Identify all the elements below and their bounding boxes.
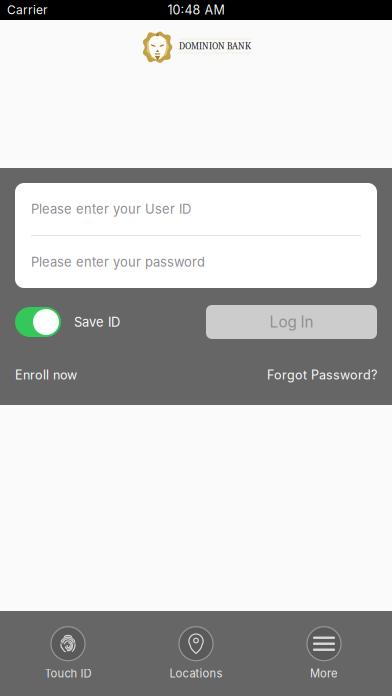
staticText: Please enter your password	[31, 254, 205, 270]
staticText: Touch ID	[44, 667, 91, 680]
button[interactable]: More	[274, 611, 374, 696]
staticText: More	[310, 667, 338, 680]
button[interactable]: Log In	[206, 305, 377, 339]
staticText: Carrier	[7, 3, 48, 17]
button[interactable]: Save ID	[15, 305, 120, 339]
staticText: Forgot Password?	[267, 367, 377, 383]
staticText: Enroll now	[15, 367, 77, 383]
staticText: Log In	[269, 313, 313, 331]
button[interactable]: Locations	[146, 611, 246, 696]
staticText: 10:48 AM	[167, 2, 224, 18]
button[interactable]: Enroll now	[15, 365, 77, 385]
button[interactable]: Forgot Password?	[267, 365, 377, 385]
button[interactable]: Touch ID	[18, 611, 118, 696]
staticText: Locations	[169, 667, 222, 680]
staticText: Save ID	[74, 314, 120, 330]
staticText: DOMINION BANK	[179, 40, 251, 52]
staticText: Please enter your User ID	[31, 201, 191, 217]
